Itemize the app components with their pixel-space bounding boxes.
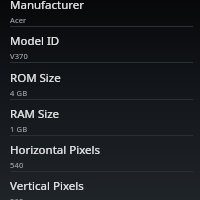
staticText: 4 GB bbox=[10, 88, 28, 98]
button[interactable]: ROM Size bbox=[0, 70, 200, 99]
staticText: Acer bbox=[10, 15, 27, 25]
staticText: RAM Size bbox=[10, 106, 60, 122]
staticText: Model ID bbox=[10, 33, 60, 49]
staticText: 960 bbox=[10, 196, 24, 200]
staticText: 1 GB bbox=[10, 124, 28, 134]
button[interactable]: Model ID bbox=[0, 33, 200, 62]
staticText: ROM Size bbox=[10, 70, 61, 86]
button[interactable]: Horizontal Pixels bbox=[0, 142, 200, 171]
button[interactable]: RAM Size bbox=[0, 106, 200, 135]
staticText: Manufacturer bbox=[10, 0, 85, 13]
staticText: Horizontal Pixels bbox=[10, 142, 100, 158]
staticText: V370 bbox=[10, 51, 28, 61]
button[interactable]: Vertical Pixels bbox=[0, 178, 200, 200]
button[interactable]: Manufacturer bbox=[0, 0, 200, 26]
staticText: Vertical Pixels bbox=[10, 178, 84, 194]
staticText: 540 bbox=[10, 160, 24, 170]
